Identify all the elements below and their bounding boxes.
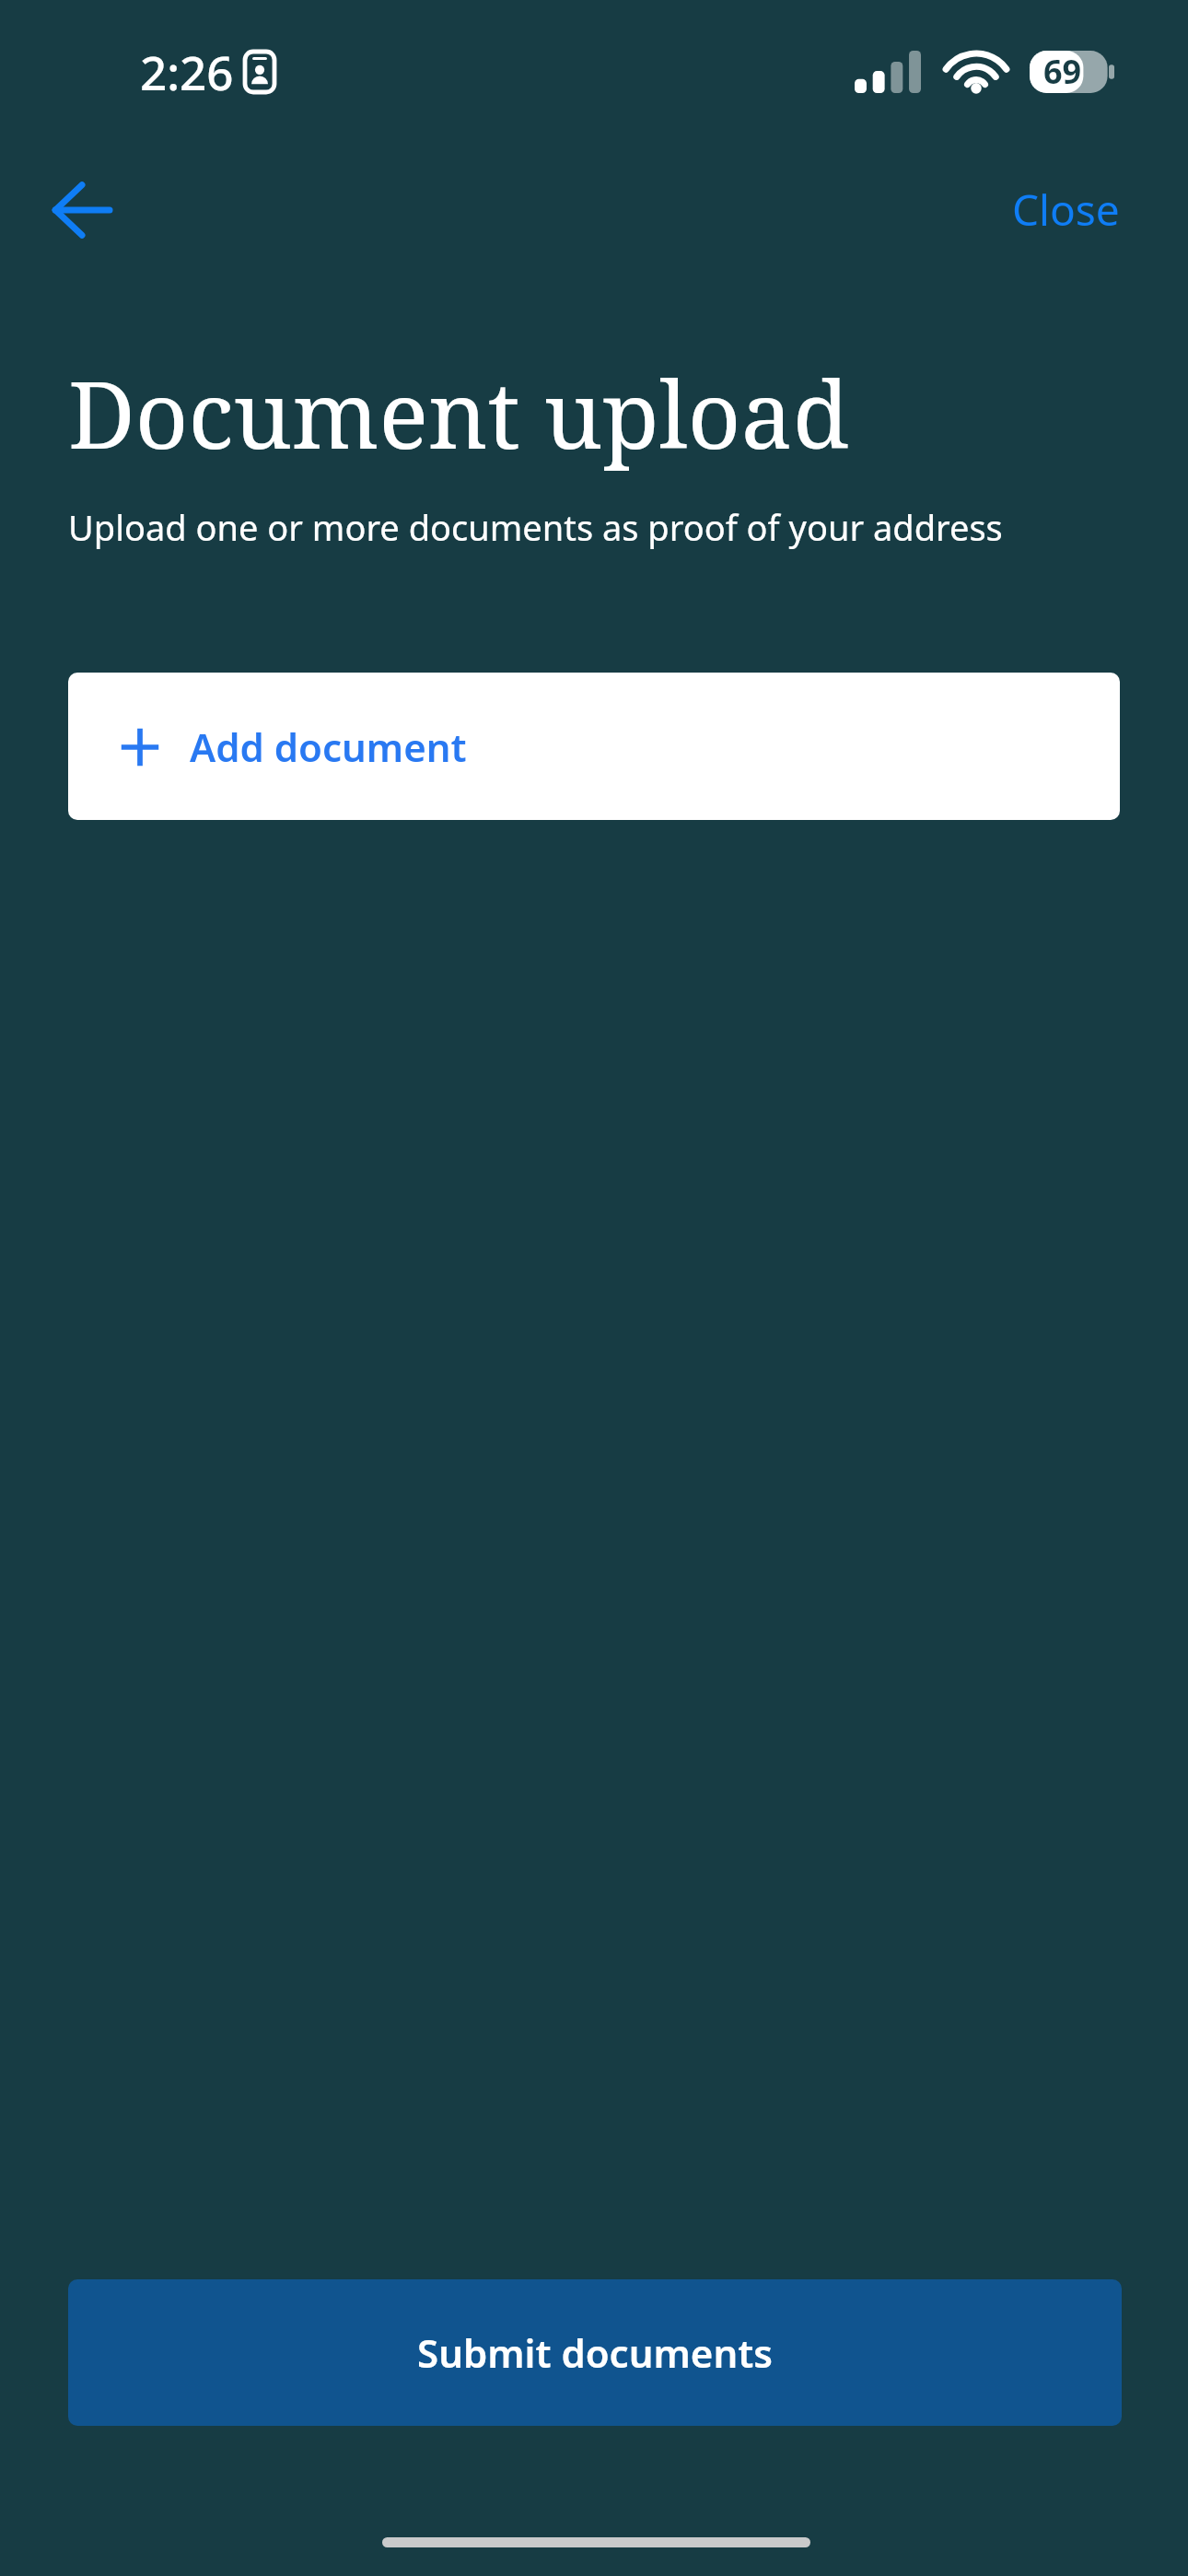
staticText: 2:26 <box>140 40 234 103</box>
staticText: Document upload <box>68 350 850 475</box>
button[interactable]: Close <box>990 164 1142 255</box>
staticText: Submit documents <box>417 2326 773 2379</box>
button[interactable]: Submit documents <box>68 2279 1122 2426</box>
staticText: 69 <box>1043 49 1082 94</box>
button[interactable]: Add document <box>68 673 1120 820</box>
staticText: Close <box>1012 181 1120 239</box>
staticText: Upload one or more documents as proof of… <box>68 503 1003 551</box>
button[interactable]: Back <box>28 156 136 264</box>
staticText: Add document <box>190 720 467 773</box>
